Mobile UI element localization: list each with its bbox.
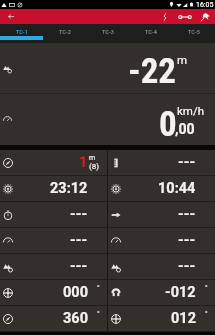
- staticText: 16:05: [196, 1, 214, 9]
- button[interactable]: TC-4: [129, 24, 172, 43]
- staticText: m: [177, 53, 188, 66]
- button[interactable]: TC-1: [0, 24, 43, 43]
- staticText: ---: [178, 154, 196, 171]
- button[interactable]: -012: [108, 280, 215, 305]
- button[interactable]: ---: [0, 202, 107, 227]
- button[interactable]: 1: [0, 150, 107, 175]
- staticText: ---: [178, 206, 196, 223]
- staticText: ---: [70, 258, 88, 275]
- button[interactable]: ---: [0, 254, 107, 279]
- staticText: TC-4: [145, 29, 157, 35]
- staticText: TC-1: [16, 29, 28, 35]
- button[interactable]: Back: [0, 9, 21, 24]
- staticText: TC-3: [102, 29, 114, 35]
- staticText: -012: [165, 284, 196, 301]
- staticText: ---: [70, 206, 88, 223]
- button[interactable]: ---: [108, 228, 215, 253]
- staticText: 23:12: [50, 180, 88, 197]
- button[interactable]: 360: [0, 306, 107, 331]
- staticText: (8): [89, 162, 100, 171]
- staticText: -22: [128, 51, 177, 92]
- staticText: 10:44: [158, 180, 196, 197]
- button[interactable]: Live tracking: [156, 9, 174, 24]
- button[interactable]: TC-5: [172, 24, 215, 43]
- staticText: 012: [171, 310, 196, 327]
- staticText: °: [97, 284, 100, 292]
- button[interactable]: 012: [108, 306, 215, 331]
- staticText: °: [205, 284, 208, 292]
- staticText: °: [205, 310, 208, 318]
- staticText: TC-5: [188, 29, 200, 35]
- staticText: m: [89, 154, 96, 162]
- button[interactable]: TC-3: [86, 24, 129, 43]
- button[interactable]: -22: [0, 43, 215, 93]
- staticText: °: [97, 310, 100, 318]
- staticText: 0: [159, 104, 177, 145]
- button[interactable]: ---: [108, 202, 215, 227]
- button[interactable]: TC-2: [43, 24, 86, 43]
- staticText: 360: [63, 310, 88, 327]
- staticText: km/h: [177, 104, 204, 117]
- button[interactable]: 10:44: [108, 176, 215, 201]
- staticText: ---: [178, 232, 196, 249]
- button[interactable]: ---: [108, 150, 215, 175]
- button[interactable]: 0: [0, 94, 215, 145]
- staticText: 1: [79, 154, 88, 171]
- button[interactable]: Pin: [196, 9, 215, 24]
- button[interactable]: Calibrate: [174, 9, 196, 24]
- button[interactable]: 23:12: [0, 176, 107, 201]
- button[interactable]: ---: [0, 228, 107, 253]
- staticText: TC-2: [59, 29, 71, 35]
- staticText: ---: [70, 232, 88, 249]
- staticText: ,00: [175, 121, 195, 137]
- staticText: ---: [178, 258, 196, 275]
- button[interactable]: ---: [108, 254, 215, 279]
- staticText: 000: [63, 284, 88, 301]
- button[interactable]: 000: [0, 280, 107, 305]
